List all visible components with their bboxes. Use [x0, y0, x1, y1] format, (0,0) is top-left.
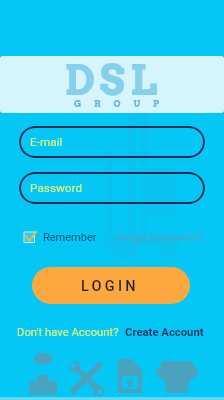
staticText: DSL: [65, 55, 162, 106]
button[interactable]: Password: [19, 172, 205, 204]
button[interactable]: Network: [153, 357, 201, 395]
staticText: Remember: [43, 231, 97, 244]
button[interactable]: Support: [26, 350, 62, 396]
staticText: E-mail: [30, 135, 63, 149]
staticText: LOGIN: [81, 278, 139, 295]
staticText: G R O U P: [74, 98, 165, 109]
button[interactable]: Documents: [116, 357, 144, 395]
button[interactable]: Create Account: [125, 323, 204, 341]
staticText: Forget Password?: [116, 231, 204, 244]
button[interactable]: Service: [68, 358, 106, 396]
button[interactable]: LOGIN: [32, 267, 190, 304]
staticText: Don't have Account?: [17, 326, 119, 339]
button[interactable]: Forget Password?: [116, 228, 204, 246]
button[interactable]: Remember: [23, 229, 97, 245]
button[interactable]: E-mail: [19, 126, 205, 158]
staticText: Create Account: [125, 326, 204, 339]
staticText: Password: [30, 181, 83, 195]
